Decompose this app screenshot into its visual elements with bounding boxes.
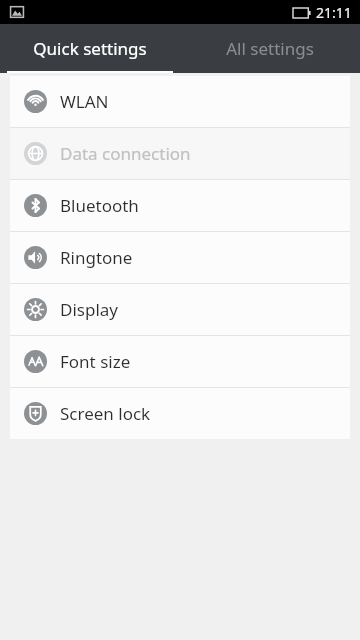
staticText: Quick settings [33, 37, 147, 60]
button[interactable]: Font size [10, 336, 350, 387]
staticText: All settings [226, 37, 314, 60]
staticText: Data connection [60, 142, 191, 165]
button[interactable]: Display [10, 284, 350, 335]
staticText: 21:11 [316, 3, 352, 22]
button[interactable]: Data connection [10, 128, 350, 179]
button[interactable]: Screen lock [10, 388, 350, 439]
staticText: Ringtone [60, 246, 133, 269]
staticText: Font size [60, 350, 131, 373]
button[interactable]: Quick settings [0, 24, 180, 73]
button[interactable]: All settings [180, 24, 360, 73]
button[interactable]: WLAN [10, 76, 350, 127]
staticText: Display [60, 298, 118, 321]
staticText: Screen lock [60, 402, 151, 425]
staticText: Bluetooth [60, 194, 139, 217]
staticText: WLAN [60, 90, 109, 113]
button[interactable]: Ringtone [10, 232, 350, 283]
button[interactable]: Bluetooth [10, 180, 350, 231]
